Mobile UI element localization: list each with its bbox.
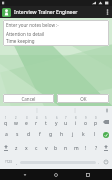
staticText: x <box>25 145 28 152</box>
staticText: ?123 <box>5 160 12 164</box>
button[interactable]: c <box>31 141 41 155</box>
staticText: l <box>94 131 96 138</box>
button[interactable]: 7 <box>61 115 71 128</box>
button[interactable]: Emoji <box>102 155 110 169</box>
button[interactable]: ! <box>81 141 91 155</box>
staticText: 5 <box>45 116 47 120</box>
button[interactable]: Shift <box>1 141 11 155</box>
staticText: Enter your notes below :- <box>6 22 59 28</box>
button[interactable]: g <box>45 128 56 141</box>
staticText: g <box>49 131 53 138</box>
button[interactable]: z <box>11 141 21 155</box>
button[interactable]: b <box>51 141 61 155</box>
button[interactable]: Enter your notes below :- <box>3 20 109 46</box>
staticText: e <box>25 120 28 127</box>
staticText: w <box>14 120 18 127</box>
staticText: 9 <box>85 116 87 120</box>
button[interactable]: Comma <box>14 155 20 169</box>
staticText: k <box>82 131 85 138</box>
button[interactable]: Recent apps <box>81 169 95 180</box>
staticText: 6 <box>56 116 58 120</box>
button[interactable]: l <box>89 128 100 141</box>
button[interactable]: a <box>1 128 12 141</box>
staticText: n <box>64 145 68 152</box>
button[interactable]: ? <box>91 141 101 155</box>
staticText: h <box>60 131 64 138</box>
staticText: v <box>45 145 48 152</box>
staticText: b <box>54 145 58 152</box>
staticText: 7 <box>65 116 67 120</box>
button[interactable]: OK <box>57 94 109 103</box>
button[interactable]: 4 <box>31 115 41 128</box>
staticText: o <box>84 120 88 127</box>
button[interactable]: 8 <box>71 115 81 128</box>
staticText: c <box>35 145 38 152</box>
staticText: z <box>15 145 18 152</box>
button[interactable]: App icon <box>2 8 11 17</box>
staticText: 8 <box>75 116 77 120</box>
staticText: Interview Trainer Engineer <box>14 9 78 16</box>
staticText: Attention to detail <box>6 31 45 37</box>
button[interactable]: Enter <box>100 128 111 141</box>
button[interactable]: v <box>41 141 51 155</box>
button[interactable]: j <box>67 128 78 141</box>
button[interactable]: h <box>56 128 67 141</box>
button[interactable]: 1 <box>1 115 11 128</box>
button[interactable]: 6 <box>51 115 61 128</box>
button[interactable]: Backspace <box>101 115 111 128</box>
button[interactable]: d <box>23 128 34 141</box>
staticText: , <box>16 160 18 165</box>
staticText: ! <box>85 145 87 152</box>
staticText: 3 <box>26 116 28 120</box>
button[interactable]: Home <box>49 169 63 180</box>
staticText: 2 <box>15 116 17 120</box>
button[interactable]: More options <box>102 6 112 18</box>
staticText: ? <box>95 145 98 152</box>
button[interactable]: f <box>34 128 45 141</box>
staticText: . <box>98 160 100 165</box>
staticText: m <box>74 145 79 152</box>
staticText: q <box>4 120 8 127</box>
staticText: u <box>64 120 68 127</box>
button[interactable]: 3 <box>21 115 31 128</box>
staticText: 0 <box>95 116 97 120</box>
staticText: OK <box>80 96 87 102</box>
staticText: j <box>72 131 74 138</box>
staticText: Cancel <box>21 96 36 102</box>
button[interactable]: m <box>71 141 81 155</box>
staticText: r <box>35 120 38 127</box>
button[interactable]: n <box>61 141 71 155</box>
button[interactable]: Cancel <box>3 94 54 103</box>
staticText: i <box>75 120 77 127</box>
button[interactable]: 5 <box>41 115 51 128</box>
button[interactable]: k <box>78 128 89 141</box>
button[interactable]: 9 <box>81 115 91 128</box>
button[interactable]: Back <box>18 169 32 180</box>
staticText: p <box>94 120 98 127</box>
staticText: 1 <box>5 116 7 120</box>
button[interactable]: x <box>21 141 31 155</box>
button[interactable]: Symbols <box>2 155 14 169</box>
staticText: y <box>55 120 58 127</box>
staticText: s <box>16 131 19 138</box>
staticText: 4 <box>36 116 38 120</box>
button[interactable]: 2 <box>11 115 21 128</box>
button[interactable]: 0 <box>91 115 101 128</box>
staticText: d <box>27 131 31 138</box>
staticText: t <box>45 120 47 127</box>
button[interactable]: Shift <box>101 141 111 155</box>
staticText: a <box>5 131 8 138</box>
staticText: Time keeping <box>6 38 35 44</box>
staticText: f <box>39 131 41 138</box>
button[interactable]: s <box>12 128 23 141</box>
